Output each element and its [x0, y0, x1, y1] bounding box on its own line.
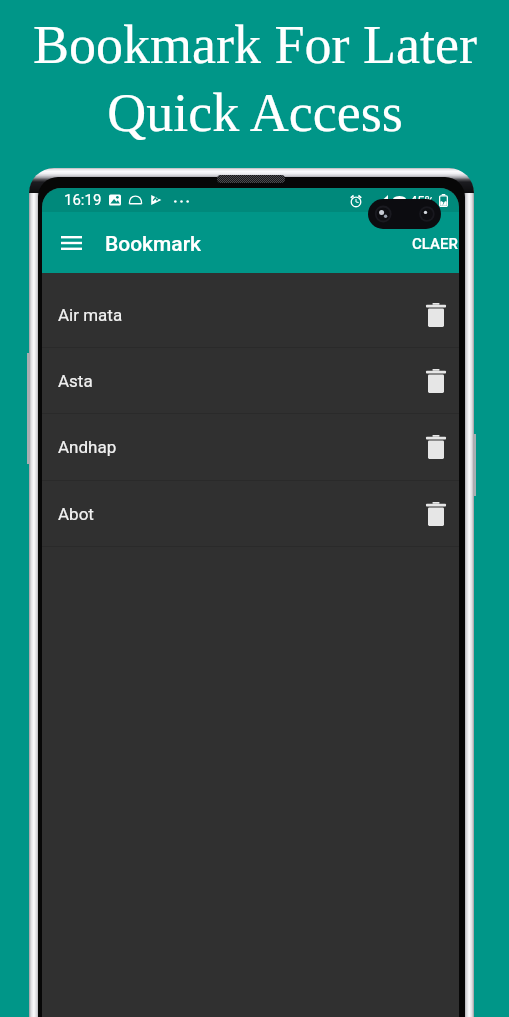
button[interactable]: Air mata	[42, 282, 459, 348]
button[interactable]: Abot	[42, 481, 459, 547]
button[interactable]: Asta	[42, 348, 459, 414]
button[interactable]: Delete Air mata	[417, 296, 455, 334]
staticText: Bookmark	[105, 232, 202, 257]
staticText: Abot	[58, 504, 94, 524]
staticText: Quick Access	[107, 83, 403, 143]
staticText: 16:19	[64, 191, 102, 209]
button[interactable]: Open navigation drawer	[52, 224, 90, 262]
staticText: 45%	[410, 193, 435, 208]
button[interactable]: CLAER	[400, 220, 458, 266]
staticText: Bookmark For Later	[33, 15, 477, 75]
button[interactable]: Delete Abot	[417, 495, 455, 533]
staticText: Air mata	[58, 305, 123, 325]
button[interactable]: Delete Andhap	[417, 428, 455, 466]
button[interactable]: Delete Asta	[417, 362, 455, 400]
staticText: Asta	[58, 371, 93, 391]
staticText: Andhap	[58, 437, 117, 457]
staticText: CLAER	[412, 235, 458, 253]
button[interactable]: Andhap	[42, 414, 459, 480]
